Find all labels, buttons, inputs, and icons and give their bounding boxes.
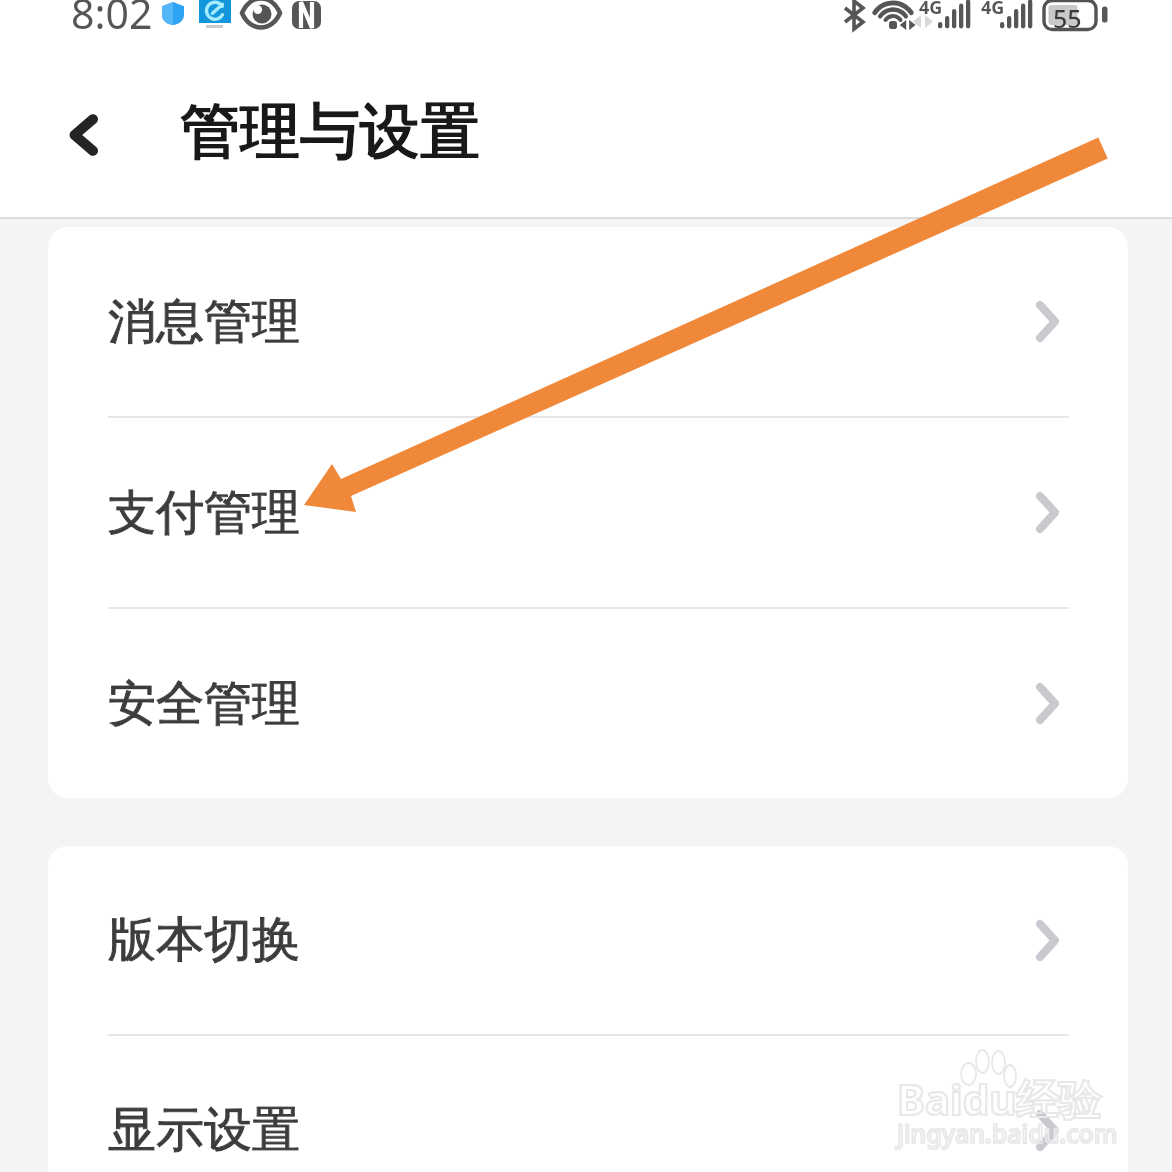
staticText: 版本切换 [108, 910, 300, 970]
staticText: 55 [1053, 1, 1082, 35]
staticText: 4G [981, 0, 1005, 20]
staticText: 显示设置 [108, 1100, 300, 1160]
staticText: 消息管理 [108, 292, 300, 352]
staticText: 管理与设置 [180, 94, 480, 170]
button[interactable]: 安全管理 [48, 609, 1128, 798]
button[interactable]: 支付管理 [48, 418, 1128, 607]
staticText: Baidu经验 [897, 1070, 1101, 1127]
staticText: 版本切换 [108, 910, 300, 970]
button[interactable]: Back [43, 90, 123, 180]
button[interactable]: 显示设置 [48, 1036, 1128, 1172]
staticText: jingyan.baidu.com [897, 1116, 1118, 1150]
button[interactable]: 消息管理 [48, 227, 1128, 416]
staticText: 8:02 [71, 0, 153, 33]
staticText: 显示设置 [108, 1100, 300, 1160]
staticText: 消息管理 [108, 292, 300, 352]
staticText: 4G [919, 0, 943, 20]
staticText: 支付管理 [108, 483, 300, 543]
staticText: 管理与设置 [180, 94, 480, 170]
button[interactable]: 版本切换 [48, 846, 1128, 1034]
staticText: 安全管理 [108, 674, 300, 734]
staticText: 支付管理 [108, 483, 300, 543]
staticText: 安全管理 [108, 674, 300, 734]
